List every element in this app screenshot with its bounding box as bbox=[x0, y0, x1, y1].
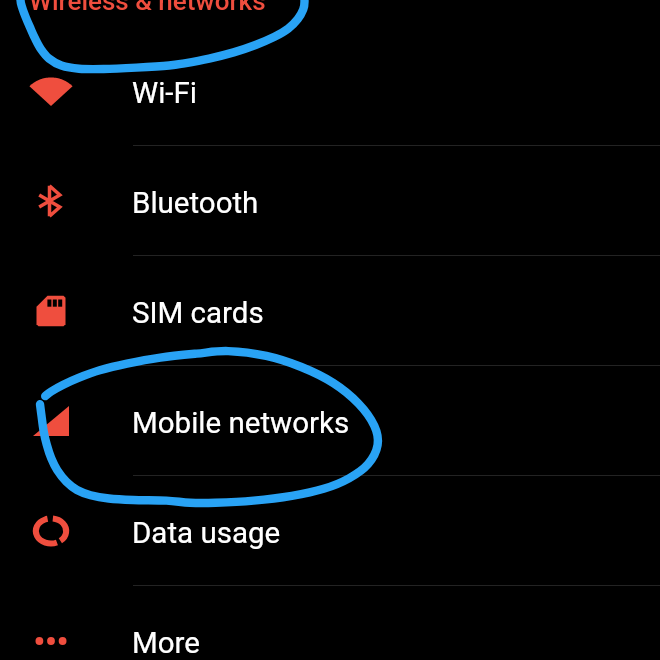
staticText: SIM cards bbox=[132, 296, 264, 331]
staticText: More bbox=[132, 626, 200, 660]
button[interactable]: More bbox=[0, 586, 660, 660]
button[interactable]: Data usage bbox=[0, 476, 660, 586]
button[interactable]: Wi-Fi bbox=[0, 36, 660, 146]
staticText: Wireless & networks bbox=[29, 0, 266, 16]
button[interactable]: Wireless & networks bbox=[0, 0, 660, 36]
staticText: Data usage bbox=[132, 516, 281, 551]
staticText: Mobile networks bbox=[132, 406, 350, 441]
button[interactable]: Bluetooth bbox=[0, 146, 660, 256]
staticText: Bluetooth bbox=[132, 186, 259, 221]
button[interactable]: Mobile networks bbox=[0, 366, 660, 476]
staticText: Wi-Fi bbox=[132, 76, 197, 111]
button[interactable]: SIM cards bbox=[0, 256, 660, 366]
